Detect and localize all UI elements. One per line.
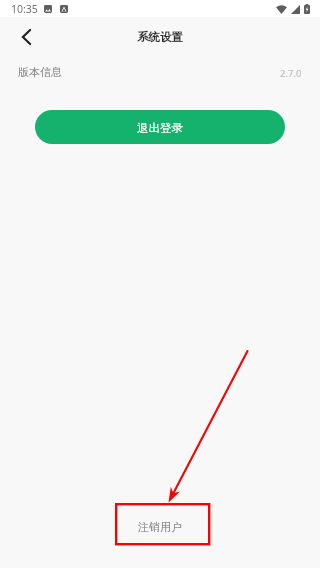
button[interactable]: 注销用户 (113, 506, 207, 548)
button[interactable]: 退出登录 (35, 110, 285, 144)
staticText: 系统设置 (137, 30, 183, 44)
button[interactable]: 版本信息 (0, 57, 320, 87)
staticText: 退出登录 (137, 121, 183, 135)
staticText: 注销用户 (138, 520, 182, 534)
button[interactable]: Back (4, 17, 48, 57)
staticText: 2.7.0 (280, 67, 302, 80)
staticText: 10:35 (11, 2, 38, 16)
staticText: 版本信息 (18, 65, 62, 79)
